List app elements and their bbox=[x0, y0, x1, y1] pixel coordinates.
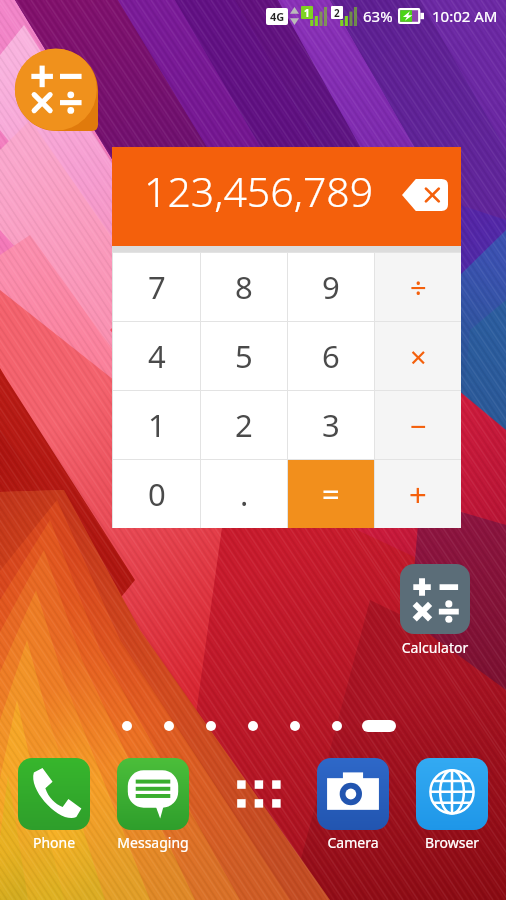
button[interactable]: 0 bbox=[113, 460, 200, 528]
button[interactable]: Browser bbox=[406, 758, 498, 852]
button[interactable]: Messaging bbox=[107, 758, 199, 852]
staticText: − bbox=[410, 406, 427, 445]
staticText: = bbox=[322, 473, 340, 515]
button[interactable]: Calculator bbox=[392, 564, 478, 657]
staticText: 2 bbox=[235, 404, 253, 446]
staticText: + bbox=[409, 473, 427, 515]
button[interactable]: 9 bbox=[288, 253, 374, 321]
staticText: 2 bbox=[334, 6, 340, 19]
button[interactable]: − bbox=[375, 391, 461, 459]
button[interactable]: 5 bbox=[201, 322, 287, 390]
staticText: 4G bbox=[270, 9, 285, 24]
staticText: Messaging bbox=[107, 833, 199, 852]
staticText: 4 bbox=[148, 335, 166, 377]
button[interactable]: = bbox=[288, 460, 374, 528]
staticText: 1 bbox=[304, 6, 310, 19]
staticText: 6 bbox=[322, 335, 340, 377]
staticText: 123,456,789 bbox=[144, 163, 374, 219]
button[interactable]: + bbox=[375, 460, 461, 528]
staticText: 0 bbox=[148, 473, 166, 515]
button[interactable]: ÷ bbox=[375, 253, 461, 321]
button[interactable]: 4 bbox=[113, 322, 200, 390]
staticText: . bbox=[240, 473, 249, 515]
staticText: × bbox=[410, 337, 427, 376]
staticText: 1 bbox=[148, 404, 166, 446]
button[interactable]: Phone bbox=[8, 758, 100, 852]
button[interactable]: All apps bbox=[207, 758, 299, 858]
staticText: 7 bbox=[148, 266, 166, 308]
button[interactable]: 3 bbox=[288, 391, 374, 459]
button[interactable]: 7 bbox=[113, 253, 200, 321]
staticText: 9 bbox=[322, 266, 340, 308]
staticText: ÷ bbox=[410, 268, 427, 307]
button[interactable]: Camera bbox=[307, 758, 399, 852]
button[interactable]: 8 bbox=[201, 253, 287, 321]
staticText: Calculator bbox=[392, 638, 478, 657]
button[interactable]: × bbox=[375, 322, 461, 390]
button[interactable]: 6 bbox=[288, 322, 374, 390]
staticText: Phone bbox=[8, 833, 100, 852]
staticText: 10:02 AM bbox=[432, 6, 498, 26]
staticText: 3 bbox=[322, 404, 340, 446]
staticText: 63% bbox=[363, 6, 393, 26]
button[interactable]: . bbox=[201, 460, 287, 528]
button[interactable]: Backspace bbox=[402, 179, 448, 211]
staticText: Camera bbox=[307, 833, 399, 852]
button[interactable]: 2 bbox=[201, 391, 287, 459]
button[interactable]: 1 bbox=[113, 391, 200, 459]
staticText: 8 bbox=[235, 266, 253, 308]
staticText: Browser bbox=[406, 833, 498, 852]
staticText: 5 bbox=[235, 335, 253, 377]
button[interactable]: Calculator shortcut bbox=[15, 49, 98, 131]
